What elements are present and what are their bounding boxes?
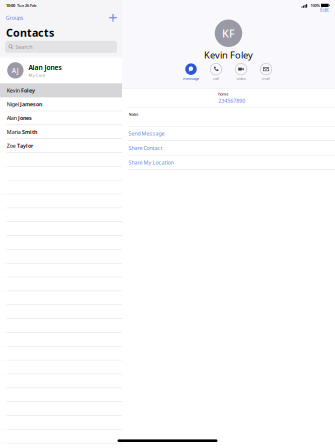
staticText: 100% <box>310 3 319 8</box>
button[interactable]: Groups <box>6 14 24 21</box>
button[interactable]: Nigel <box>0 97 122 111</box>
button[interactable]: Zoe <box>0 139 122 153</box>
button[interactable]: Search <box>5 41 117 53</box>
button[interactable]: Edit <box>320 6 329 13</box>
staticText: call <box>213 76 219 81</box>
staticText: video <box>236 76 245 81</box>
button[interactable]: Send Message <box>122 127 335 141</box>
staticText: Share My Location <box>128 159 173 166</box>
button[interactable]: Share My Location <box>122 156 335 170</box>
button[interactable]: mail <box>253 63 278 81</box>
button[interactable]: Notes <box>122 108 335 127</box>
staticText: Share Contact <box>128 144 162 152</box>
staticText: Contacts <box>6 26 54 40</box>
staticText: Nigel <box>7 101 19 108</box>
staticText: Maria <box>7 128 21 135</box>
staticText: 234567890 <box>218 97 245 104</box>
button[interactable]: Add Contact <box>109 14 117 22</box>
staticText: Jones <box>18 114 32 122</box>
staticText: message <box>183 76 199 81</box>
button[interactable]: video <box>228 63 253 81</box>
button[interactable]: AJ <box>0 58 122 84</box>
staticText: Alan Jones <box>28 63 61 72</box>
button[interactable]: Maria <box>0 125 122 139</box>
staticText: Send Message <box>128 130 164 137</box>
staticText: My Card <box>28 72 44 78</box>
staticText: Smith <box>22 128 37 135</box>
staticText: AJ <box>12 66 19 75</box>
staticText: Search <box>15 43 32 50</box>
button[interactable]: home <box>122 89 335 108</box>
staticText: Taylor <box>17 142 33 149</box>
button[interactable]: call <box>203 63 228 81</box>
staticText: Alan <box>7 114 17 122</box>
staticText: Zoe <box>7 142 16 149</box>
button[interactable]: Share Contact <box>122 141 335 156</box>
staticText: mail <box>262 76 270 81</box>
staticText: Edit <box>320 6 329 13</box>
staticText: KF <box>222 26 235 40</box>
staticText: home <box>218 91 228 97</box>
staticText: Groups <box>6 14 24 21</box>
button[interactable]: message <box>178 63 203 81</box>
staticText: Kevin <box>7 87 20 94</box>
staticText: 10:00 <box>6 3 15 8</box>
staticText: Tue 26 Feb <box>15 3 36 8</box>
staticText: Kevin Foley <box>204 49 253 61</box>
button[interactable]: Alan <box>0 111 122 125</box>
button[interactable]: Kevin <box>0 84 122 97</box>
staticText: Notes <box>128 112 138 117</box>
staticText: Jameson <box>20 101 42 108</box>
staticText: Foley <box>21 87 35 94</box>
